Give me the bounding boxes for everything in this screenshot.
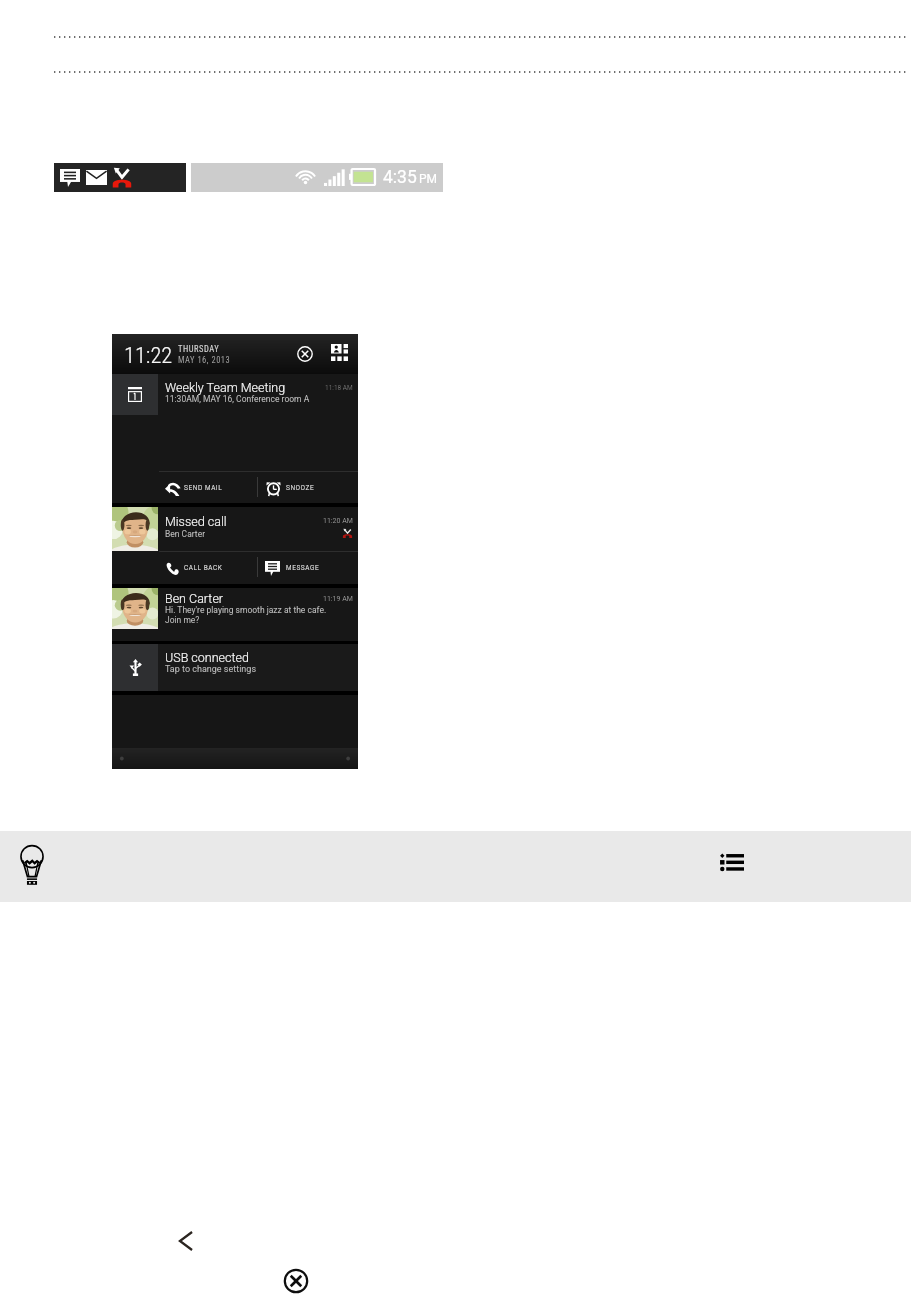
staticText: 11:19 AM [323, 595, 353, 603]
button[interactable]: CALL BACK [113, 552, 257, 583]
staticText: 11:22 [124, 342, 173, 368]
staticText: Ben Carter [165, 529, 342, 539]
staticText: Missed call [165, 514, 323, 529]
button[interactable]: Quick settings [329, 342, 349, 362]
staticText: 11:20 AM [323, 517, 353, 525]
staticText: CALL BACK [184, 563, 223, 572]
button[interactable]: Close [282, 1267, 310, 1294]
button[interactable]: Weekly Team Meeting [112, 374, 358, 503]
button[interactable]: List view [718, 850, 746, 874]
staticText: SNOOZE [286, 483, 315, 492]
button[interactable]: Missed call [112, 507, 358, 584]
button[interactable]: Clear all notifications [294, 343, 316, 365]
staticText: Ben Carter [165, 591, 323, 606]
staticText: THURSDAY [178, 344, 220, 354]
staticText: 4:35 [383, 167, 417, 188]
button[interactable]: MESSAGE [258, 552, 357, 583]
staticText: USB connected [165, 650, 249, 665]
button[interactable]: SNOOZE [258, 472, 357, 503]
staticText: SEND MAIL [184, 483, 223, 492]
staticText: 11:18 AM [325, 384, 353, 392]
staticText: 11:30AM, MAY 16, Conference room A [165, 394, 310, 404]
button[interactable]: Ben Carter [112, 588, 358, 641]
staticText: Hi. They're playing smooth jazz at the c… [165, 605, 327, 625]
staticText: Tap to change settings [165, 664, 257, 675]
button[interactable]: Back [170, 1226, 200, 1256]
staticText: MAY 16, 2013 [178, 355, 231, 365]
button[interactable]: USB connected [112, 644, 358, 691]
staticText: PM [419, 172, 438, 186]
staticText: MESSAGE [286, 563, 320, 572]
staticText: Weekly Team Meeting [165, 380, 325, 395]
button[interactable]: SEND MAIL [113, 472, 257, 503]
